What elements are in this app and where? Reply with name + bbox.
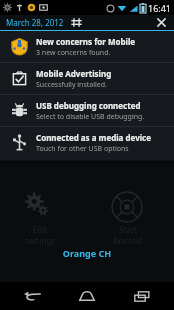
button[interactable]: Clear all notifications — [155, 16, 168, 29]
button[interactable]: USB debugging connected — [0, 95, 174, 126]
staticText: Touch for other USB options — [36, 144, 129, 154]
button[interactable]: Start Android — [110, 190, 144, 224]
staticText: Select to disable USB debugging. — [36, 112, 145, 122]
button[interactable]: Mobile Advertising — [0, 63, 174, 94]
button[interactable]: New concerns for Mobile Advertising — [0, 31, 174, 62]
staticText: USB debugging connected — [36, 100, 141, 111]
staticText: 16:41 — [148, 2, 172, 14]
staticText: March 28, 2012 — [6, 17, 64, 28]
staticText: Edit settings — [16, 224, 64, 246]
staticText: New concerns for Mobile Advertising — [36, 36, 168, 47]
button[interactable]: Edit settings — [22, 190, 56, 224]
staticText: Successfully installed. — [36, 80, 107, 90]
button[interactable]: Back — [9, 282, 55, 310]
button[interactable]: Connected as a media device — [0, 127, 174, 158]
button[interactable]: Recent apps — [119, 282, 165, 310]
staticText: Connected as a media device — [36, 132, 152, 143]
staticText: Orange CH — [0, 247, 174, 259]
staticText: 3 new concerns found. — [36, 48, 111, 58]
staticText: Start Android — [104, 224, 152, 246]
staticText: Mobile Advertising — [36, 68, 112, 79]
button[interactable]: Settings — [70, 16, 83, 29]
button[interactable]: Home — [64, 282, 110, 310]
